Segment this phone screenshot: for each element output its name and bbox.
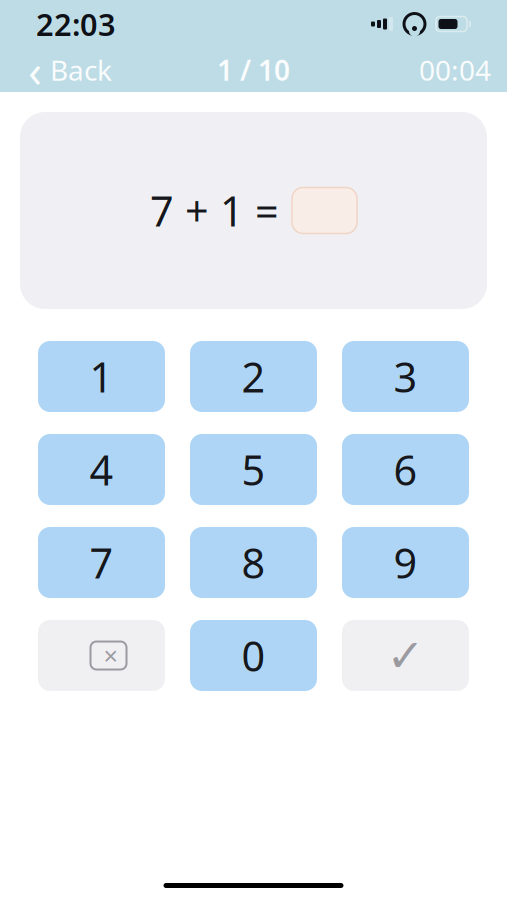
button[interactable]: Delete — [38, 620, 165, 691]
staticText: 6 — [393, 442, 417, 497]
staticText: 00:04 — [419, 51, 491, 89]
staticText: 7 — [89, 535, 113, 590]
button[interactable]: 2 — [190, 341, 317, 412]
staticText: 2 — [241, 349, 265, 404]
staticText: ‹ — [28, 40, 42, 100]
staticText: 3 — [393, 349, 417, 404]
button[interactable]: 5 — [190, 434, 317, 505]
button[interactable]: Confirm answer — [342, 620, 469, 691]
button[interactable]: 6 — [342, 434, 469, 505]
button[interactable]: 1 — [38, 341, 165, 412]
staticText: 1 — [89, 349, 113, 404]
staticText: 7 + 1 = — [150, 183, 279, 238]
staticText: Back — [50, 51, 112, 89]
staticText: 9 — [393, 535, 417, 590]
staticText: × — [103, 639, 117, 672]
button[interactable]: 9 — [342, 527, 469, 598]
button[interactable]: 7 — [38, 527, 165, 598]
staticText: 0 — [241, 628, 265, 683]
button[interactable]: ‹ — [16, 45, 124, 95]
staticText: 8 — [241, 535, 265, 590]
staticText: 22:03 — [36, 4, 116, 44]
staticText: 1 / 10 — [217, 51, 290, 89]
staticText: ✓ — [386, 630, 424, 681]
button[interactable]: 0 — [190, 620, 317, 691]
button[interactable]: 8 — [190, 527, 317, 598]
staticText: 4 — [89, 442, 113, 497]
button[interactable]: 3 — [342, 341, 469, 412]
button[interactable]: 4 — [38, 434, 165, 505]
staticText: 5 — [241, 442, 265, 497]
